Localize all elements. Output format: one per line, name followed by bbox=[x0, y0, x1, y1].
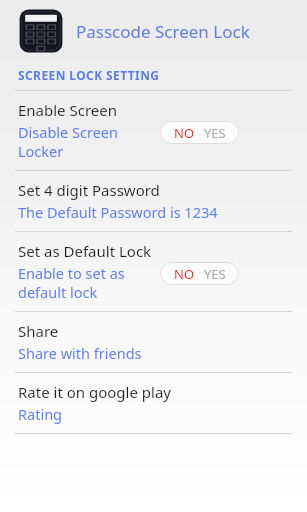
button[interactable]: Share bbox=[0, 312, 307, 372]
button[interactable]: Toggle NO or YES bbox=[160, 262, 239, 285]
staticText: YES bbox=[204, 124, 226, 142]
button[interactable]: Enable Screen bbox=[0, 91, 307, 170]
staticText: The Default Password is 1234 bbox=[18, 202, 218, 222]
button[interactable]: Set 4 digit Password bbox=[0, 171, 307, 231]
button[interactable]: Toggle NO or YES bbox=[160, 121, 239, 144]
button[interactable]: App icon bbox=[0, 0, 307, 62]
other: App icon bbox=[18, 8, 64, 54]
staticText: Share bbox=[18, 321, 59, 341]
staticText: SCREEN LOCK SETTING bbox=[18, 67, 160, 83]
staticText: Passcode Screen Lock bbox=[76, 20, 250, 43]
staticText: Share with friends bbox=[18, 343, 142, 363]
staticText: NO bbox=[174, 265, 195, 283]
button[interactable]: Rate it on google play bbox=[0, 373, 307, 433]
button[interactable]: Set as Default Lock Screen bbox=[0, 232, 307, 311]
staticText: Enable to set as default lock bbox=[18, 263, 154, 302]
staticText: Rate it on google play bbox=[18, 382, 171, 402]
staticText: Set as Default Lock Screen bbox=[18, 241, 154, 261]
staticText: Enable Screen bbox=[18, 100, 118, 120]
staticText: YES bbox=[204, 265, 226, 283]
staticText: Disable Screen Locker bbox=[18, 122, 154, 161]
staticText: Set 4 digit Password bbox=[18, 180, 160, 200]
staticText: NO bbox=[174, 124, 195, 142]
staticText: Rating bbox=[18, 404, 63, 424]
